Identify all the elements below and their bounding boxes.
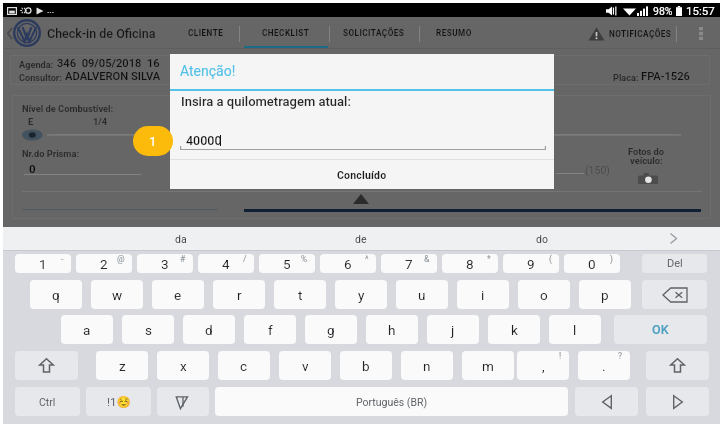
- button[interactable]: 0: [564, 254, 620, 273]
- button[interactable]: Back: [3, 17, 15, 50]
- staticText: 9: [527, 256, 535, 272]
- button[interactable]: OK: [614, 315, 707, 344]
- staticText: i: [481, 287, 485, 303]
- button[interactable]: q: [30, 280, 82, 309]
- button[interactable]: 8: [442, 254, 498, 273]
- staticText: 2: [100, 256, 108, 272]
- staticText: -: [61, 254, 64, 264]
- button[interactable]: ,: [517, 351, 569, 380]
- staticText: @: [117, 254, 125, 264]
- button[interactable]: RESUMO: [427, 17, 480, 49]
- button[interactable]: CHECKLIST: [244, 17, 328, 49]
- staticText: 4: [222, 256, 230, 272]
- staticText: n: [423, 358, 431, 374]
- button[interactable]: v: [279, 351, 331, 380]
- button[interactable]: Português (BR): [215, 387, 568, 416]
- button[interactable]: y: [335, 280, 387, 309]
- staticText: Agenda:: [19, 59, 54, 70]
- button[interactable]: Left: [575, 387, 638, 416]
- button[interactable]: do: [484, 227, 599, 250]
- button[interactable]: j: [427, 315, 479, 344]
- button[interactable]: 6: [320, 254, 376, 273]
- staticText: NOTIFICAÇÕES: [609, 29, 672, 39]
- button[interactable]: 9: [503, 254, 559, 273]
- button[interactable]: Ctrl: [15, 387, 80, 416]
- button[interactable]: l: [549, 315, 601, 344]
- button[interactable]: 1: [15, 254, 71, 273]
- button[interactable]: Handwriting: [157, 387, 209, 416]
- staticText: SOLICITAÇÕES: [343, 28, 405, 38]
- button[interactable]: 3: [137, 254, 193, 273]
- staticText: 1: [39, 256, 47, 272]
- button[interactable]: !1☺: [86, 387, 151, 416]
- button[interactable]: t: [274, 280, 326, 309]
- button[interactable]: o: [518, 280, 570, 309]
- staticText: k: [511, 322, 518, 338]
- staticText: &: [424, 254, 430, 264]
- button[interactable]: Concluído: [170, 160, 554, 189]
- staticText: Consultor:: [19, 72, 62, 83]
- staticText: w: [112, 287, 123, 303]
- staticText: 1/4: [93, 116, 108, 127]
- button[interactable]: da: [123, 227, 238, 250]
- button[interactable]: z: [96, 351, 148, 380]
- staticText: 346 09/05/2018 16: [57, 57, 160, 70]
- button[interactable]: c: [218, 351, 270, 380]
- staticText: 1: [149, 133, 157, 149]
- staticText: E: [28, 116, 34, 127]
- button[interactable]: f: [244, 315, 296, 344]
- button[interactable]: 4: [198, 254, 254, 273]
- button[interactable]: NOTIFICAÇÕES: [583, 17, 672, 50]
- button[interactable]: x: [157, 351, 209, 380]
- button[interactable]: a: [61, 315, 113, 344]
- button[interactable]: k: [488, 315, 540, 344]
- staticText: !: [559, 351, 562, 361]
- staticText: l: [573, 322, 577, 338]
- button[interactable]: g: [305, 315, 357, 344]
- button[interactable]: Shift: [15, 351, 78, 380]
- staticText: y: [358, 287, 365, 303]
- button[interactable]: h: [366, 315, 418, 344]
- button[interactable]: SOLICITAÇÕES: [336, 17, 412, 49]
- button[interactable]: e: [152, 280, 204, 309]
- button[interactable]: Del: [642, 254, 707, 273]
- staticText: (150): [585, 164, 610, 176]
- staticText: f: [268, 322, 273, 338]
- button[interactable]: r: [213, 280, 265, 309]
- button[interactable]: de: [303, 227, 418, 250]
- staticText: 40000: [186, 133, 222, 148]
- button[interactable]: More suggestions: [643, 227, 703, 250]
- staticText: OK: [652, 322, 669, 337]
- button[interactable]: p: [579, 280, 631, 309]
- staticText: b: [362, 358, 370, 374]
- staticText: Concluído: [337, 169, 387, 181]
- button[interactable]: Backspace: [642, 280, 707, 309]
- staticText: RESUMO: [436, 28, 472, 38]
- staticText: Nível de Combustível:: [22, 103, 114, 114]
- button[interactable]: i: [457, 280, 509, 309]
- button[interactable]: Right: [646, 387, 709, 416]
- button[interactable]: CLIENTE: [180, 17, 232, 49]
- button[interactable]: Shift: [646, 351, 709, 380]
- staticText: z: [119, 358, 126, 374]
- button[interactable]: m: [462, 351, 514, 380]
- button[interactable]: n: [401, 351, 453, 380]
- button[interactable]: .: [578, 351, 630, 380]
- button[interactable]: u: [396, 280, 448, 309]
- staticText: .: [602, 358, 606, 374]
- button[interactable]: d: [183, 315, 235, 344]
- staticText: *: [487, 254, 491, 264]
- button[interactable]: 5: [259, 254, 315, 273]
- button[interactable]: s: [122, 315, 174, 344]
- staticText: do: [536, 233, 548, 245]
- button[interactable]: 7: [381, 254, 437, 273]
- button[interactable]: More options: [689, 17, 713, 50]
- button[interactable]: w: [91, 280, 143, 309]
- staticText: h: [388, 322, 396, 338]
- staticText: c: [240, 358, 248, 374]
- staticText: 0: [588, 256, 596, 272]
- button[interactable]: 2: [76, 254, 132, 273]
- button[interactable]: b: [340, 351, 392, 380]
- staticText: 6: [344, 256, 352, 272]
- staticText: d: [205, 322, 213, 338]
